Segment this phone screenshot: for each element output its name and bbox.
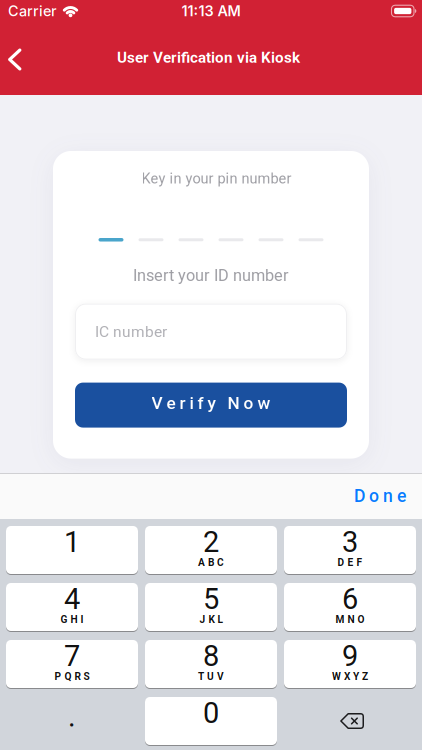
staticText: T U V [198,671,224,682]
button[interactable]: 2 [145,526,277,574]
staticText: IC number [95,322,167,341]
staticText: 2 [203,525,219,559]
staticText: 11:13 AM [181,2,240,20]
staticText: V e r i f y N o w [151,393,270,413]
button[interactable]: 5 [145,583,277,631]
staticText: 4 [64,582,80,616]
staticText: A B C [198,557,224,568]
button[interactable]: IC number [75,304,347,360]
staticText: 7 [64,639,80,673]
button[interactable]: 0 [145,697,277,745]
staticText: Insert your ID number [133,266,289,285]
button[interactable]: 9 [284,640,416,688]
staticText: Key in your pin number [141,170,291,187]
staticText: W X Y Z [332,671,368,682]
staticText: 0 [203,696,219,730]
button[interactable]: 7 [6,640,138,688]
button[interactable]: Decimal point [6,697,138,745]
button[interactable]: 6 [284,583,416,631]
button[interactable]: 1 [6,526,138,574]
button[interactable]: 3 [284,526,416,574]
staticText: 5 [203,582,219,616]
staticText: . [68,699,76,733]
staticText: 9 [342,639,358,673]
staticText: D E F [337,557,362,568]
staticText: M N O [335,614,364,625]
staticText: D o n e [354,486,406,506]
button[interactable]: Delete [284,697,416,745]
staticText: Carrier [8,2,57,20]
staticText: 1 [64,525,80,559]
staticText: 8 [203,639,219,673]
button[interactable]: V e r i f y N o w [75,383,347,428]
staticText: P Q R S [54,671,89,682]
button[interactable]: 8 [145,640,277,688]
staticText: 6 [342,582,358,616]
button[interactable]: Back [0,38,21,80]
button[interactable]: D o n e [354,486,422,506]
staticText: User Verification via Kiosk [117,49,300,66]
staticText: G H I [60,614,83,625]
staticText: J K L [199,614,222,625]
staticText: 3 [342,525,358,559]
button[interactable]: 4 [6,583,138,631]
